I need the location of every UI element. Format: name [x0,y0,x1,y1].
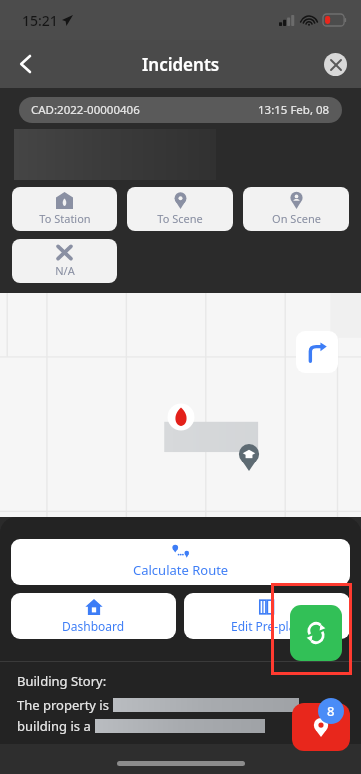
staticText: 13:15 Feb, 08 [258,102,330,118]
button[interactable]: Calculate Route [11,539,350,585]
staticText: Edit Pre-plan [231,618,303,634]
button[interactable]: Swap [290,605,342,661]
staticText: CAD:2022-00000406 [31,102,140,118]
button[interactable]: Navigate [296,331,338,373]
button[interactable]: On Scene [243,187,349,231]
button[interactable]: CAD:2022-00000406 [19,97,342,123]
staticText: 15:21 [22,11,58,30]
staticText: On Scene [272,211,321,226]
staticText: To Scene [157,211,203,226]
staticText: N/A [55,263,75,278]
staticText: 8 [327,702,335,720]
staticText: To Station [39,211,91,226]
staticText: The property is [17,696,113,714]
staticText: Building Story: [17,672,107,690]
button[interactable]: Close [324,53,347,76]
button[interactable]: Back [4,42,48,86]
staticText: building is a [17,717,95,735]
staticText: Incidents [142,53,220,76]
button[interactable]: N/A [12,239,117,283]
button[interactable]: Locations [292,703,350,751]
button[interactable]: Edit Pre-plan [184,593,350,639]
staticText: Calculate Route [133,561,229,579]
button[interactable]: To Scene [127,187,233,231]
button[interactable]: Dashboard [11,593,176,639]
button[interactable]: To Station [12,187,117,231]
staticText: Dashboard [62,618,125,634]
